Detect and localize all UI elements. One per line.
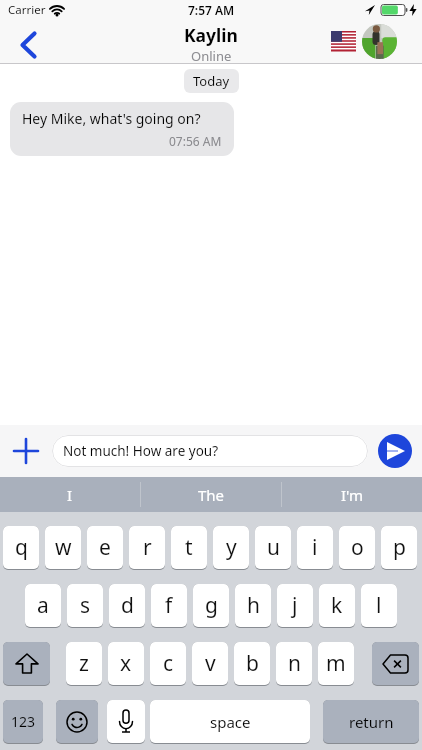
button[interactable] (378, 434, 412, 468)
staticText: space (210, 712, 251, 732)
staticText: w (55, 533, 72, 562)
button[interactable] (14, 26, 42, 64)
staticText: o (351, 533, 364, 562)
button[interactable] (362, 24, 397, 59)
button[interactable]: j (277, 584, 313, 628)
staticText: n (288, 649, 301, 678)
staticText: k (331, 591, 343, 620)
button[interactable]: z (66, 642, 102, 686)
staticText: u (267, 533, 280, 562)
staticText: e (99, 533, 111, 562)
button[interactable]: r (129, 526, 165, 570)
staticText: i (312, 533, 318, 562)
button[interactable]: o (339, 526, 375, 570)
button[interactable]: l (361, 584, 397, 628)
staticText: m (326, 649, 346, 678)
staticText: v (205, 649, 216, 678)
staticText: p (393, 533, 406, 562)
staticText: Online (191, 47, 232, 64)
button[interactable]: I (0, 477, 140, 512)
button[interactable]: space (150, 700, 310, 744)
button[interactable]: u (255, 526, 291, 570)
staticText: c (163, 649, 174, 678)
button[interactable] (0, 425, 52, 477)
button[interactable]: y (213, 526, 249, 570)
staticText: Carrier (8, 2, 46, 18)
button[interactable]: 123 (3, 700, 43, 744)
staticText: Not much! How are you? (63, 442, 219, 460)
button[interactable]: d (109, 584, 145, 628)
button[interactable]: m (318, 642, 354, 686)
button[interactable]: The (141, 477, 281, 512)
staticText: I'm (341, 485, 364, 505)
button[interactable] (3, 642, 50, 686)
staticText: r (143, 533, 152, 562)
staticText: The (198, 485, 225, 505)
staticText: f (165, 591, 173, 620)
button[interactable]: s (67, 584, 103, 628)
button[interactable]: Hey Mike, what's going on? (10, 102, 234, 156)
button[interactable]: n (276, 642, 312, 686)
button[interactable]: c (150, 642, 186, 686)
staticText: 07:56 AM (169, 133, 222, 149)
button[interactable]: h (235, 584, 271, 628)
staticText: j (292, 591, 298, 620)
button[interactable]: a (25, 584, 61, 628)
staticText: d (121, 591, 134, 620)
button[interactable]: Today (184, 69, 239, 93)
staticText: Kaylin (184, 23, 238, 47)
staticText: z (79, 649, 89, 678)
staticText: 123 (11, 712, 36, 731)
button[interactable]: g (193, 584, 229, 628)
button[interactable]: q (3, 526, 39, 570)
button[interactable]: Not much! How are you? (52, 435, 368, 467)
button[interactable]: b (234, 642, 270, 686)
staticText: h (247, 591, 260, 620)
button[interactable]: v (192, 642, 228, 686)
button[interactable]: f (151, 584, 187, 628)
staticText: a (37, 591, 49, 620)
staticText: I (67, 485, 73, 505)
staticText: return (349, 712, 394, 732)
button[interactable]: I'm (282, 477, 422, 512)
button[interactable]: return (323, 700, 419, 744)
staticText: g (205, 591, 218, 620)
staticText: l (376, 591, 382, 620)
staticText: q (15, 533, 28, 562)
button[interactable] (372, 642, 419, 686)
staticText: y (226, 533, 237, 562)
button[interactable]: i (297, 526, 333, 570)
button[interactable]: k (319, 584, 355, 628)
staticText: x (120, 649, 132, 678)
button[interactable] (56, 700, 98, 744)
staticText: b (246, 649, 259, 678)
button[interactable]: x (108, 642, 144, 686)
button[interactable]: e (87, 526, 123, 570)
button[interactable]: w (45, 526, 81, 570)
staticText: s (80, 591, 91, 620)
button[interactable] (107, 700, 145, 744)
staticText: t (185, 533, 193, 562)
button[interactable]: p (381, 526, 417, 570)
staticText: 7:57 AM (188, 2, 235, 18)
staticText: Hey Mike, what's going on? (22, 109, 201, 128)
button[interactable]: t (171, 526, 207, 570)
staticText: Today (193, 72, 230, 90)
